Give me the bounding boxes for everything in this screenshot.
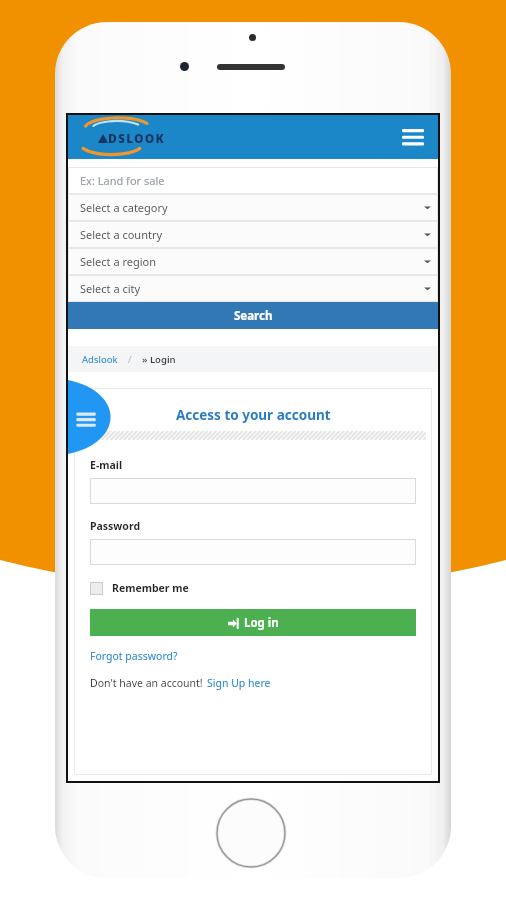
button[interactable]: Select a city	[68, 275, 438, 302]
button[interactable]: Sign Up here	[207, 676, 271, 690]
button[interactable]: Adslook	[82, 353, 118, 366]
staticText: Remember me	[112, 581, 189, 595]
button[interactable]: Select a region	[68, 248, 438, 275]
staticText: Select a category	[80, 200, 168, 215]
staticText: Select a region	[80, 254, 157, 269]
button[interactable]: Log in	[90, 609, 416, 636]
button[interactable]: Open menu	[398, 122, 428, 152]
button[interactable]: Remember me	[90, 581, 189, 595]
button[interactable]: Select a category	[68, 194, 438, 221]
button[interactable]	[90, 478, 416, 504]
staticText: Forgot password?	[90, 649, 178, 663]
staticText: Access to your account	[176, 406, 331, 424]
staticText: Adslook	[82, 353, 118, 366]
staticText: » Login	[142, 353, 176, 366]
button[interactable]	[90, 539, 416, 565]
button[interactable]: Search	[68, 302, 438, 329]
button[interactable]: Menu	[68, 380, 110, 454]
staticText: /	[128, 353, 132, 366]
button[interactable]: Select a country	[68, 221, 438, 248]
button[interactable]: Adslook home	[78, 117, 186, 157]
staticText: Select a country	[80, 227, 163, 242]
staticText: Select a city	[80, 281, 141, 296]
staticText: Ex: Land for sale	[80, 173, 165, 188]
button[interactable]: Ex: Land for sale	[68, 167, 438, 194]
staticText: Don't have an account!	[90, 676, 203, 690]
button[interactable]: Forgot password?	[90, 649, 178, 663]
staticText: Sign Up here	[207, 676, 271, 690]
staticText: Log in	[244, 615, 279, 631]
staticText: DSLOOK	[108, 130, 166, 146]
staticText: Password	[90, 519, 141, 533]
staticText: Search	[234, 308, 273, 324]
staticText: E-mail	[90, 458, 123, 472]
